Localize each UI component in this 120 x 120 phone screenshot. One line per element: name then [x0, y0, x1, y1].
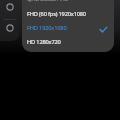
- staticText: FHD 1920x1080: [27, 24, 67, 32]
- button[interactable]: HD 1280x720: [22, 35, 114, 49]
- button[interactable]: FHD 1920x1080: [22, 21, 114, 35]
- staticText: QHD 2560x1440: [27, 0, 68, 3]
- button[interactable]: QHD 2560x1440: [22, 0, 114, 6]
- button[interactable]: FHD (60 fps) 1920x1080: [22, 7, 114, 21]
- button[interactable]: Aspect ratio: [3, 0, 16, 13]
- staticText: FHD (60 fps) 1920x1080: [27, 10, 86, 18]
- staticText: HD 1280x720: [27, 38, 61, 46]
- button[interactable]: Resolution: [3, 21, 16, 34]
